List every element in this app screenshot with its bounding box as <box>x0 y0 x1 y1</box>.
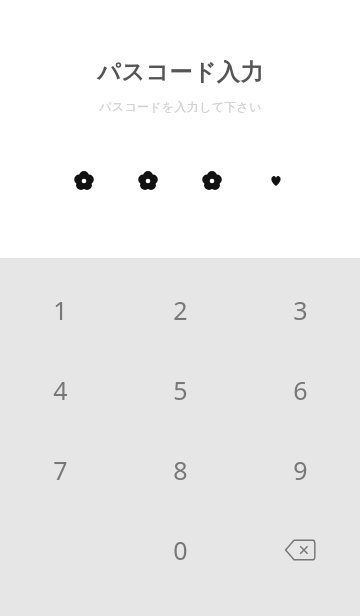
button[interactable]: 1 <box>0 270 120 350</box>
button[interactable]: 0 <box>120 510 240 590</box>
button[interactable]: 6 <box>240 350 360 430</box>
staticText: 0 <box>173 533 188 567</box>
button[interactable]: 8 <box>120 430 240 510</box>
button[interactable]: 5 <box>120 350 240 430</box>
staticText: 3 <box>293 293 308 327</box>
staticText: 4 <box>53 373 68 407</box>
staticText: 6 <box>293 373 308 407</box>
button[interactable]: Delete <box>240 510 360 590</box>
button[interactable]: 3 <box>240 270 360 350</box>
staticText: 8 <box>173 453 188 487</box>
staticText: パスコード入力 <box>97 58 264 87</box>
button[interactable]: 9 <box>240 430 360 510</box>
staticText: 1 <box>53 293 68 327</box>
staticText: 5 <box>173 373 188 407</box>
button[interactable]: 2 <box>120 270 240 350</box>
button[interactable]: 7 <box>0 430 120 510</box>
button[interactable]: 4 <box>0 350 120 430</box>
staticText: 9 <box>293 453 308 487</box>
staticText: パスコードを入力して下さい <box>99 99 262 114</box>
staticText: 7 <box>53 453 68 487</box>
staticText: 2 <box>173 293 188 327</box>
